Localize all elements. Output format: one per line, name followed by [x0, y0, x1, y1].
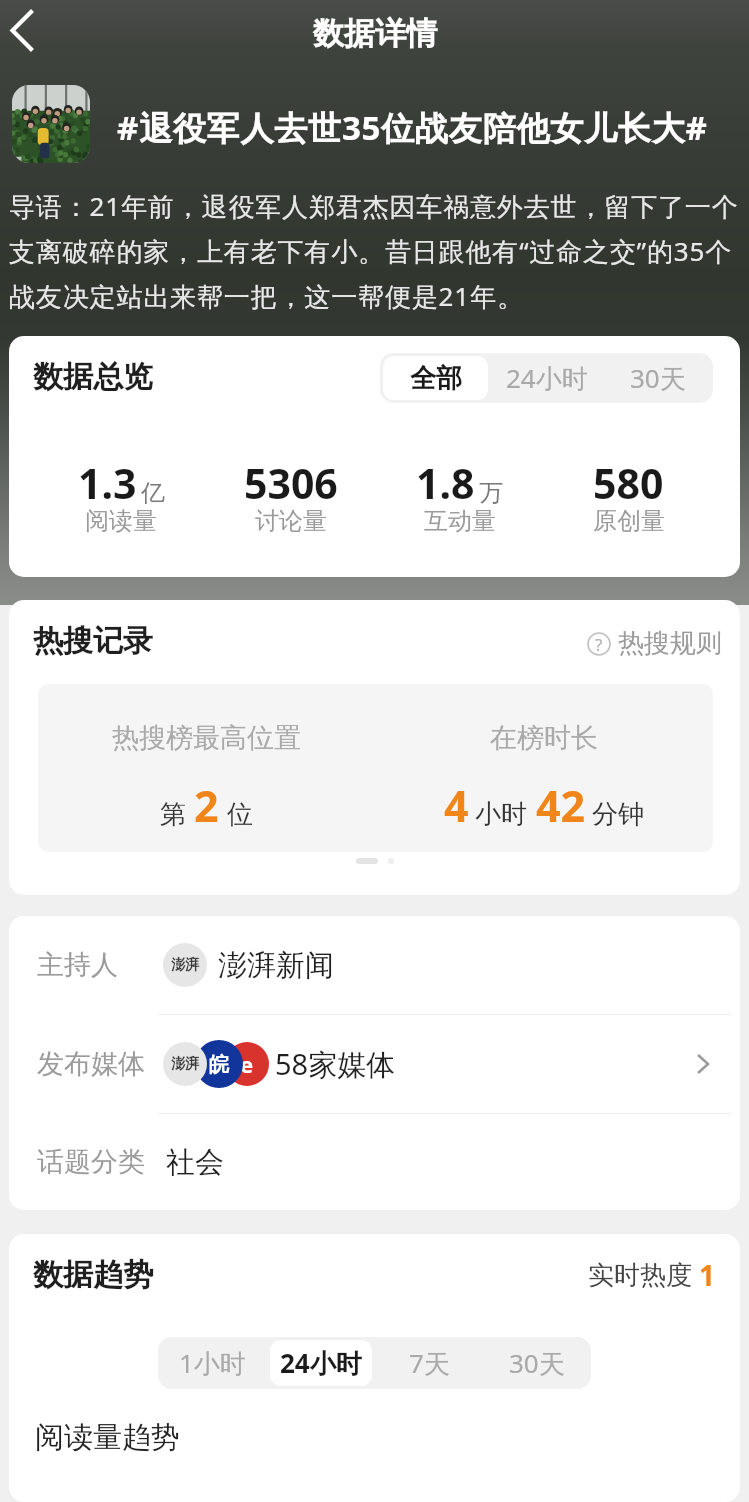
staticText: 2 — [194, 776, 219, 835]
staticText: 分钟 — [592, 798, 644, 831]
button[interactable]: 30天 — [486, 1340, 588, 1386]
staticText: 发布媒体 — [37, 1047, 145, 1081]
staticText: 热搜规则 — [618, 627, 722, 660]
staticText: 互动量 — [424, 506, 496, 536]
staticText: 24小时 — [280, 1345, 362, 1381]
staticText: 数据详情 — [313, 14, 437, 53]
staticText: 1小时 — [179, 1345, 246, 1381]
staticText: 580 — [593, 455, 664, 511]
staticText: 全部 — [410, 362, 462, 395]
staticText: 数据趋势 — [33, 1256, 153, 1294]
staticText: 讨论量 — [255, 506, 327, 536]
staticText: 话题分类 — [37, 1145, 145, 1179]
staticText: 澎湃新闻 — [218, 947, 334, 984]
staticText: 社会 — [166, 1144, 224, 1181]
staticText: 万 — [479, 478, 503, 508]
staticText: e — [240, 1049, 254, 1079]
staticText: 30天 — [630, 360, 686, 396]
staticText: 4 — [444, 776, 469, 835]
staticText: 位 — [227, 798, 253, 831]
staticText: ? — [595, 633, 603, 656]
staticText: 30天 — [509, 1345, 565, 1381]
button[interactable]: ? — [587, 627, 722, 660]
staticText: 24小时 — [506, 360, 588, 396]
staticText: 7天 — [409, 1345, 450, 1381]
staticText: 热搜记录 — [33, 622, 153, 660]
button[interactable]: 主持人 — [9, 916, 740, 1014]
button[interactable]: 话题分类 — [9, 1114, 740, 1210]
staticText: 阅读量 — [85, 506, 157, 536]
staticText: 42 — [536, 776, 586, 835]
staticText: 1 — [699, 1256, 716, 1294]
staticText: 主持人 — [37, 948, 118, 982]
staticText: #退役军人去世35位战友陪他女儿长大# — [117, 105, 708, 150]
button[interactable]: 24小时 — [270, 1340, 372, 1386]
staticText: 热搜榜最高位置 — [112, 721, 301, 755]
button[interactable]: 查看全部媒体 — [692, 1052, 716, 1076]
staticText: 澎湃 — [171, 956, 199, 974]
staticText: 实时热度 — [588, 1259, 692, 1292]
staticText: 皖 — [209, 1052, 229, 1077]
staticText: 阅读量趋势 — [35, 1419, 180, 1456]
button[interactable]: 24小时 — [494, 356, 599, 400]
button[interactable]: Back — [0, 0, 62, 62]
staticText: 1.3 — [78, 455, 137, 511]
button[interactable]: 全部 — [383, 356, 488, 400]
staticText: 导语：21年前，退役军人郑君杰因车祸意外去世，留下了一个 支离破碎的家，上有老下… — [9, 188, 749, 313]
button[interactable]: 1小时 — [161, 1340, 264, 1386]
staticText: 数据总览 — [33, 358, 153, 396]
staticText: 在榜时长 — [490, 721, 598, 755]
staticText: 原创量 — [593, 506, 665, 536]
button[interactable]: 发布媒体 — [9, 1015, 740, 1113]
button[interactable]: 30天 — [605, 356, 710, 400]
staticText: 58家媒体 — [275, 1044, 396, 1084]
staticText: 第 — [160, 798, 186, 831]
staticText: 澎湃 — [171, 1055, 199, 1073]
staticText: 小时 — [475, 798, 527, 831]
staticText: 1.8 — [416, 455, 475, 511]
staticText: 亿 — [141, 478, 165, 508]
staticText: 5306 — [244, 455, 338, 511]
button[interactable]: 7天 — [378, 1340, 480, 1386]
